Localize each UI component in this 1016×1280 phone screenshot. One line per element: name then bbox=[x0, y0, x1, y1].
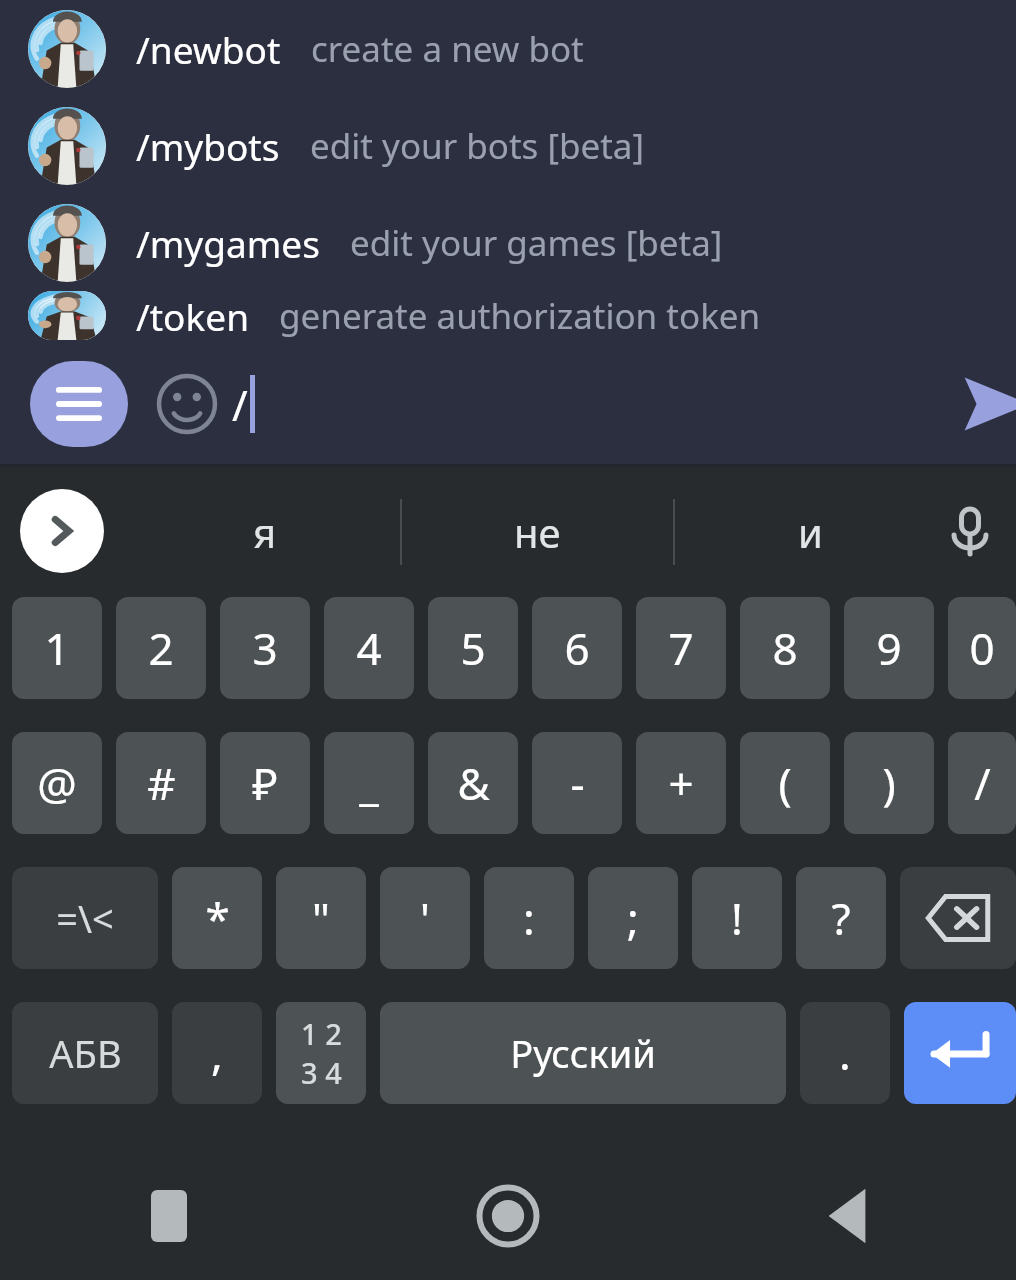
button[interactable]: ( bbox=[740, 732, 830, 834]
button[interactable]: - bbox=[532, 732, 622, 834]
staticText: 1 bbox=[44, 618, 70, 678]
staticText: 7 bbox=[668, 618, 694, 678]
button[interactable]: 2 bbox=[116, 597, 206, 699]
button[interactable]: 5 bbox=[428, 597, 518, 699]
staticText: ! bbox=[731, 888, 743, 948]
staticText: не bbox=[514, 505, 561, 559]
staticText: я bbox=[253, 505, 277, 559]
staticText: /newbot bbox=[136, 24, 281, 74]
staticText: /mygames bbox=[136, 218, 320, 268]
button[interactable]: ' bbox=[380, 867, 470, 969]
staticText: АБВ bbox=[49, 1027, 122, 1079]
staticText: , bbox=[211, 1023, 223, 1083]
button[interactable]: Numbers bbox=[276, 1002, 366, 1104]
staticText: 6 bbox=[564, 618, 590, 678]
button[interactable]: Enter bbox=[904, 1002, 1016, 1104]
staticText: и bbox=[798, 505, 823, 559]
button[interactable]: / bbox=[948, 732, 1016, 834]
button[interactable]: /mybots bbox=[0, 97, 1016, 194]
staticText: Русский bbox=[510, 1027, 656, 1079]
staticText: ; bbox=[627, 888, 639, 948]
button[interactable]: Recent apps bbox=[0, 1152, 338, 1280]
button[interactable]: Home bbox=[338, 1152, 677, 1280]
staticText: 5 bbox=[460, 618, 486, 678]
button[interactable]: ) bbox=[844, 732, 934, 834]
staticText: - bbox=[570, 753, 585, 813]
button[interactable]: Backspace bbox=[900, 867, 1016, 969]
staticText: /token bbox=[136, 291, 249, 340]
staticText: =\< bbox=[56, 892, 114, 944]
button[interactable]: Voice input bbox=[932, 494, 1008, 570]
button[interactable]: ₽ bbox=[220, 732, 310, 834]
button[interactable]: : bbox=[484, 867, 574, 969]
button[interactable]: _ bbox=[324, 732, 414, 834]
button[interactable]: Send bbox=[950, 354, 1016, 454]
button[interactable]: 9 bbox=[844, 597, 934, 699]
staticText: edit your games [beta] bbox=[350, 219, 723, 267]
staticText: 1 2 bbox=[301, 1014, 342, 1053]
staticText: " bbox=[312, 888, 330, 948]
staticText: 3 4 bbox=[301, 1053, 342, 1092]
button[interactable]: More suggestions bbox=[20, 489, 104, 573]
button[interactable]: # bbox=[116, 732, 206, 834]
staticText: ₽ bbox=[252, 753, 278, 813]
staticText: ' bbox=[420, 888, 430, 948]
button[interactable]: и bbox=[675, 467, 946, 597]
staticText: edit your bots [beta] bbox=[310, 122, 645, 170]
staticText: * bbox=[205, 888, 230, 948]
button[interactable]: =\< bbox=[12, 867, 158, 969]
staticText: 9 bbox=[876, 618, 902, 678]
staticText: + bbox=[668, 753, 694, 813]
button[interactable]: /mygames bbox=[0, 194, 1016, 291]
staticText: / bbox=[232, 376, 248, 433]
button[interactable]: 4 bbox=[324, 597, 414, 699]
button[interactable]: , bbox=[172, 1002, 262, 1104]
staticText: : bbox=[523, 888, 535, 948]
button[interactable]: я bbox=[130, 467, 400, 597]
button[interactable]: Emoji bbox=[150, 367, 224, 441]
button[interactable]: 3 bbox=[220, 597, 310, 699]
button[interactable]: Back bbox=[677, 1152, 1016, 1280]
button[interactable]: & bbox=[428, 732, 518, 834]
staticText: # bbox=[147, 753, 176, 813]
staticText: 0 bbox=[969, 618, 995, 678]
staticText: 8 bbox=[772, 618, 798, 678]
staticText: & bbox=[457, 753, 490, 813]
button[interactable]: Bot commands menu bbox=[30, 361, 128, 447]
button[interactable]: ; bbox=[588, 867, 678, 969]
staticText: 3 bbox=[252, 618, 278, 678]
button[interactable]: /newbot bbox=[0, 0, 1016, 97]
button[interactable]: 1 bbox=[12, 597, 102, 699]
button[interactable]: не bbox=[402, 467, 673, 597]
button[interactable]: @ bbox=[12, 732, 102, 834]
staticText: . bbox=[839, 1023, 851, 1083]
staticText: ) bbox=[882, 753, 896, 813]
staticText: create a new bot bbox=[311, 25, 584, 73]
button[interactable]: Русский bbox=[380, 1002, 786, 1104]
staticText: @ bbox=[37, 753, 77, 813]
staticText: 4 bbox=[356, 618, 382, 678]
button[interactable]: " bbox=[276, 867, 366, 969]
staticText: generate authorization token bbox=[279, 292, 761, 340]
staticText: /mybots bbox=[136, 121, 280, 171]
button[interactable]: 0 bbox=[948, 597, 1016, 699]
button[interactable]: АБВ bbox=[12, 1002, 158, 1104]
button[interactable]: 6 bbox=[532, 597, 622, 699]
button[interactable]: * bbox=[172, 867, 262, 969]
button[interactable]: + bbox=[636, 732, 726, 834]
button[interactable]: ! bbox=[692, 867, 782, 969]
staticText: ? bbox=[831, 888, 851, 948]
button[interactable]: 7 bbox=[636, 597, 726, 699]
staticText: ( bbox=[778, 753, 792, 813]
button[interactable]: 8 bbox=[740, 597, 830, 699]
staticText: / bbox=[974, 753, 991, 813]
button[interactable]: /token bbox=[0, 291, 1016, 340]
staticText: 2 bbox=[148, 618, 174, 678]
button[interactable]: ? bbox=[796, 867, 886, 969]
staticText: _ bbox=[359, 753, 379, 813]
button[interactable]: . bbox=[800, 1002, 890, 1104]
